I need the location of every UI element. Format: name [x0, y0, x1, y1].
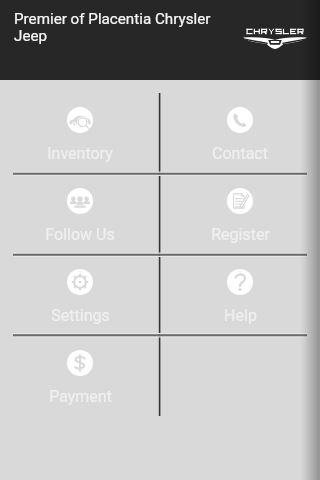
- button[interactable]: Settings: [0, 255, 160, 336]
- button[interactable]: Payment: [0, 336, 160, 417]
- staticText: Contact: [212, 144, 268, 163]
- other: Chrysler logo: [243, 28, 307, 49]
- staticText: Payment: [49, 387, 112, 406]
- staticText: Help: [224, 306, 257, 325]
- staticText: Premier of Placentia Chrysler Jeep: [14, 10, 211, 45]
- button[interactable]: Register: [160, 174, 320, 255]
- staticText: Follow Us: [45, 225, 115, 244]
- button[interactable]: Follow Us: [0, 174, 160, 255]
- staticText: Register: [211, 225, 270, 244]
- button[interactable]: Inventory: [0, 93, 160, 174]
- button[interactable]: Help: [160, 255, 320, 336]
- button[interactable]: Contact: [160, 93, 320, 174]
- staticText: Inventory: [47, 144, 113, 163]
- staticText: Settings: [51, 306, 110, 325]
